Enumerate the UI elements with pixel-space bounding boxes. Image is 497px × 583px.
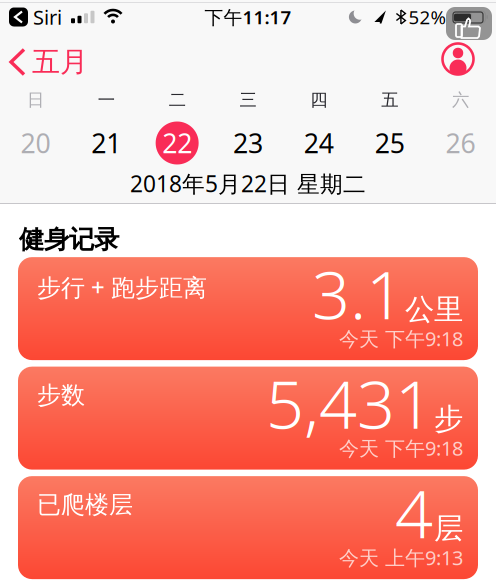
staticText: 今天 下午9:18 xyxy=(339,435,463,461)
staticText: Siri xyxy=(33,4,62,30)
staticText: 三 xyxy=(239,89,256,111)
staticText: 五月 xyxy=(32,45,88,79)
button[interactable]: 已爬楼层 xyxy=(18,476,478,579)
staticText: 3.1 xyxy=(312,249,404,338)
button[interactable]: 21 xyxy=(71,116,142,170)
button[interactable]: 26 xyxy=(425,116,496,170)
staticText: 公里 xyxy=(405,291,463,327)
button[interactable]: 23 xyxy=(213,116,283,170)
staticText: 日 xyxy=(27,89,44,111)
staticText: 步行 + 跑步距离 xyxy=(37,271,207,303)
staticText: 24 xyxy=(304,125,334,161)
staticText: 25 xyxy=(375,125,405,161)
staticText: 一 xyxy=(98,89,115,111)
staticText: 4 xyxy=(395,468,433,557)
staticText: 五 xyxy=(381,89,398,111)
staticText: 四 xyxy=(310,89,327,111)
button[interactable]: 25 xyxy=(354,116,425,170)
staticText: 健身记录 xyxy=(19,224,119,255)
staticText: 层 xyxy=(434,510,463,546)
staticText: 23 xyxy=(233,125,263,161)
staticText: 下午11:17 xyxy=(204,5,291,29)
button[interactable]: 五月 xyxy=(0,42,88,76)
staticText: 步 xyxy=(434,401,463,437)
button[interactable]: 步行 + 跑步距离 xyxy=(18,257,478,360)
staticText: 26 xyxy=(446,125,476,161)
button[interactable]: 22 xyxy=(142,116,213,170)
button[interactable]: 20 xyxy=(0,116,71,170)
staticText: 22 xyxy=(162,125,192,161)
staticText: 2018年5月22日 星期二 xyxy=(130,168,366,198)
staticText: 21 xyxy=(91,125,121,161)
staticText: 六 xyxy=(452,89,469,111)
staticText: 20 xyxy=(20,125,50,161)
button[interactable] xyxy=(441,42,475,76)
staticText: 今天 下午9:18 xyxy=(339,325,463,352)
staticText: 步数 xyxy=(37,381,85,410)
staticText: 已爬楼层 xyxy=(37,490,133,520)
staticText: 5,431 xyxy=(266,359,433,447)
button[interactable]: 24 xyxy=(283,116,354,170)
button[interactable] xyxy=(9,7,28,26)
staticText: 52% xyxy=(408,5,446,29)
staticText: 二 xyxy=(169,89,186,111)
button[interactable]: 步数 xyxy=(18,367,478,470)
staticText: 今天 上午9:13 xyxy=(339,544,463,571)
